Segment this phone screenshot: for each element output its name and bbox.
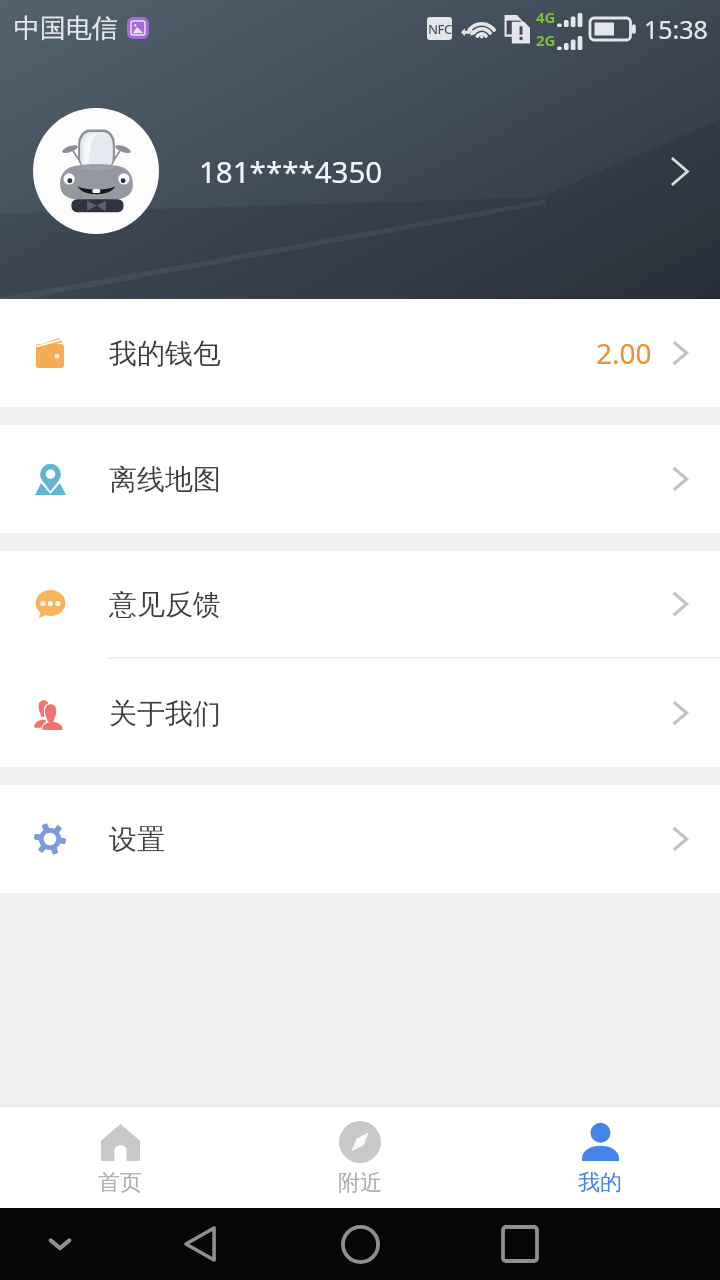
staticText: 4G — [536, 7, 556, 27]
button[interactable]: 181****4350 — [0, 56, 720, 286]
button[interactable]: 附近 — [240, 1107, 480, 1208]
staticText: NFC — [428, 20, 452, 38]
staticText: 首页 — [98, 1169, 142, 1197]
button[interactable]: Home — [338, 1222, 382, 1266]
staticText: 意见反馈 — [109, 587, 221, 622]
staticText: 2G — [536, 30, 556, 50]
staticText: 离线地图 — [109, 462, 221, 497]
button[interactable]: 首页 — [0, 1107, 240, 1208]
button[interactable]: 我的钱包 — [0, 299, 720, 407]
staticText: 2.00 — [596, 334, 652, 372]
staticText: 我的 — [578, 1169, 622, 1197]
button[interactable]: 意见反馈 — [0, 551, 720, 657]
staticText: 中国电信 — [14, 12, 118, 45]
button[interactable]: Account details — [659, 151, 699, 191]
staticText: 关于我们 — [109, 696, 221, 731]
button[interactable]: 关于我们 — [0, 659, 720, 767]
staticText: 181****4350 — [199, 151, 383, 191]
staticText: 我的钱包 — [109, 336, 221, 371]
staticText: 设置 — [109, 822, 165, 857]
staticText: 15:38 — [644, 12, 708, 46]
button[interactable]: Recents — [498, 1222, 542, 1266]
staticText: 附近 — [338, 1169, 382, 1197]
button[interactable]: 设置 — [0, 785, 720, 893]
button[interactable]: Back — [178, 1222, 222, 1266]
button[interactable]: Hide keyboard — [40, 1224, 80, 1264]
button[interactable]: 我的 — [480, 1107, 720, 1208]
button[interactable]: 离线地图 — [0, 425, 720, 533]
